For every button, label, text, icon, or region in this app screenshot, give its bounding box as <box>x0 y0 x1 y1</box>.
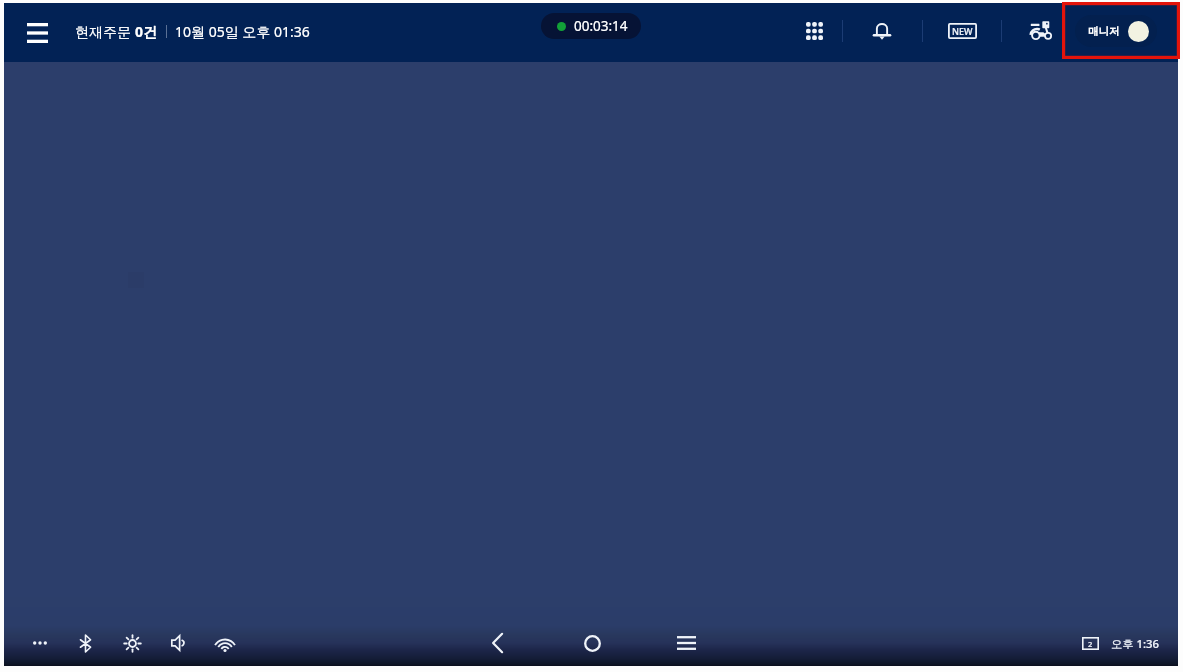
button[interactable]: Brightness <box>114 626 151 660</box>
button[interactable]: Connection timer 00:03:14 <box>541 13 641 39</box>
button[interactable]: Volume <box>161 626 195 660</box>
button[interactable]: New <box>937 5 988 56</box>
staticText: 오후 1:36 <box>1111 636 1159 651</box>
staticText: 2 <box>1088 639 1093 649</box>
button[interactable]: Recent apps <box>667 626 706 660</box>
button[interactable]: Bluetooth <box>70 626 101 660</box>
button[interactable]: More options <box>23 626 57 660</box>
staticText: 매니저 <box>1088 25 1120 38</box>
button[interactable]: Battery <box>1072 626 1109 660</box>
button[interactable]: Apps <box>795 5 834 56</box>
staticText: 0건 <box>135 22 158 41</box>
button[interactable]: Wi-Fi <box>206 626 243 660</box>
button[interactable]: Manager account <box>1062 2 1180 59</box>
staticText: 현재주문 <box>75 22 135 41</box>
staticText: 10월 05일 오후 01:36 <box>175 22 310 41</box>
button[interactable]: Back <box>482 626 513 660</box>
staticText: 00:03:14 <box>574 17 628 35</box>
button[interactable]: Delivery <box>1018 5 1063 56</box>
button[interactable]: Home <box>574 626 610 660</box>
button[interactable]: Menu <box>21 15 54 50</box>
staticText: NEW <box>952 25 973 37</box>
button[interactable]: Notifications <box>862 5 902 56</box>
button[interactable]: 오후 1:36 <box>1111 631 1159 655</box>
